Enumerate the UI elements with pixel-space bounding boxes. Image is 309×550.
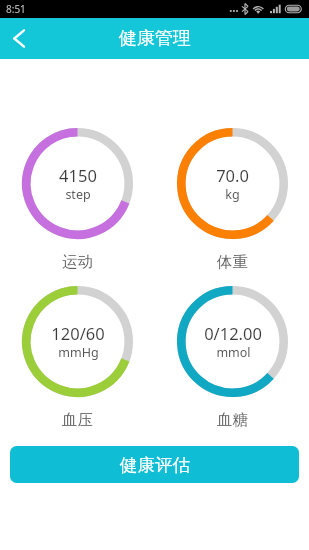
button[interactable]: 血糖 — [155, 286, 309, 438]
staticText: 0/12.00 — [204, 322, 262, 344]
staticText: 血糖 — [217, 410, 248, 430]
staticText: 血压 — [62, 410, 93, 430]
staticText: 运动 — [62, 252, 93, 272]
staticText: mmHg — [58, 344, 99, 361]
staticText: 体重 — [217, 252, 248, 272]
button[interactable]: Back — [0, 18, 38, 59]
button[interactable]: 血压 — [0, 286, 154, 438]
staticText: 120/60 — [51, 322, 105, 344]
button[interactable]: 健康评估 — [10, 446, 299, 483]
staticText: 8:51 — [6, 2, 26, 16]
staticText: 健康管理 — [119, 27, 191, 50]
staticText: kg — [225, 186, 240, 203]
staticText: step — [65, 186, 91, 203]
staticText: 健康评估 — [120, 454, 190, 476]
staticText: mmol — [216, 344, 251, 361]
staticText: 4150 — [59, 164, 97, 186]
staticText: 70.0 — [216, 164, 249, 186]
button[interactable]: 体重 — [155, 128, 309, 280]
button[interactable]: 运动 — [0, 128, 154, 280]
